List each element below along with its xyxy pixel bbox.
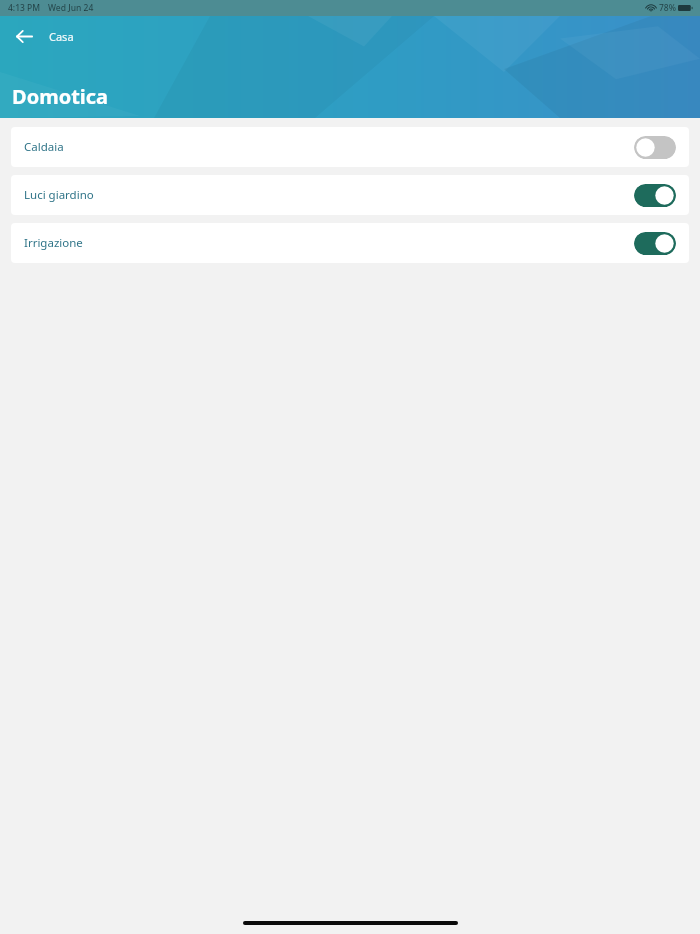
button[interactable]: Caldaia bbox=[11, 127, 689, 167]
button[interactable]: On bbox=[634, 232, 676, 255]
button[interactable]: Luci giardino bbox=[11, 175, 689, 215]
staticText: Domotica bbox=[12, 83, 109, 110]
staticText: Caldaia bbox=[24, 139, 634, 155]
staticText: 78% bbox=[659, 2, 676, 14]
button[interactable]: Off bbox=[634, 136, 676, 159]
staticText: Luci giardino bbox=[24, 187, 634, 203]
button[interactable]: Irrigazione bbox=[11, 223, 689, 263]
button[interactable]: Back bbox=[8, 20, 40, 52]
button[interactable]: On bbox=[634, 184, 676, 207]
staticText: Irrigazione bbox=[24, 235, 634, 251]
staticText: Wed Jun 24 bbox=[48, 2, 94, 14]
staticText: Casa bbox=[49, 29, 74, 44]
staticText: 4:13 PM bbox=[8, 2, 41, 14]
